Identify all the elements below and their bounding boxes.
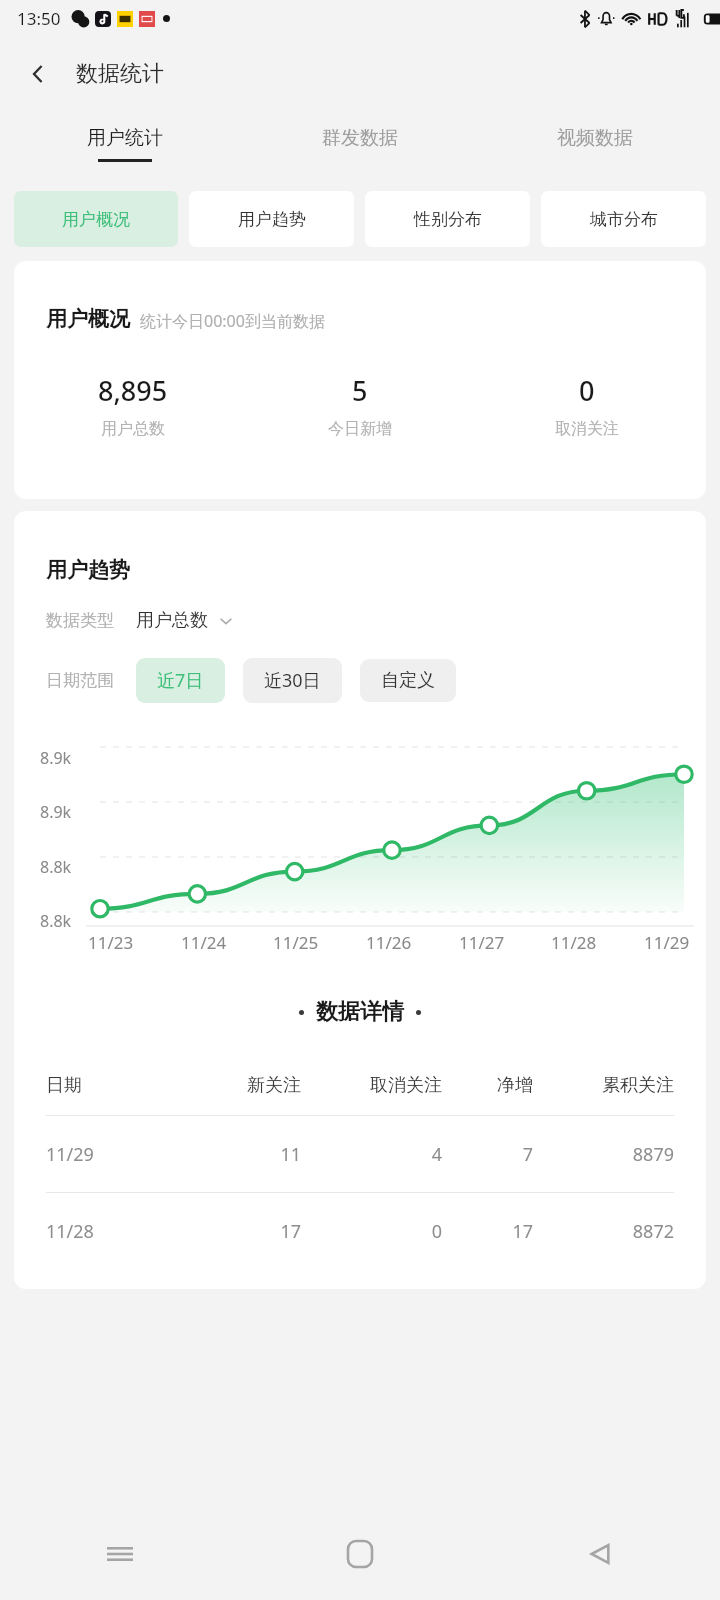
staticText: 8.9k: [40, 747, 72, 769]
staticText: 11/25: [273, 931, 319, 954]
staticText: 11/24: [181, 931, 227, 954]
staticText: 近7日: [157, 668, 204, 693]
staticText: 取消关注: [301, 1074, 442, 1097]
staticText: 新关注: [177, 1074, 301, 1097]
staticText: 今日新增: [328, 419, 392, 439]
staticText: 11: [177, 1142, 301, 1167]
staticText: 统计今日00:00到当前数据: [140, 310, 325, 332]
button[interactable]: 用户总数: [136, 609, 234, 632]
staticText: 4: [301, 1142, 442, 1167]
button[interactable]: 8,895: [20, 372, 246, 439]
staticText: 累积关注: [533, 1074, 674, 1097]
button[interactable]: 5: [246, 372, 473, 439]
staticText: 自定义: [381, 669, 435, 692]
button[interactable]: 11/28: [14, 1193, 706, 1269]
staticText: 用户概况: [46, 306, 130, 332]
staticText: 群发数据: [322, 126, 398, 150]
button[interactable]: 自定义: [360, 659, 456, 702]
button[interactable]: 用户统计: [8, 111, 242, 177]
staticText: 13:50: [17, 7, 61, 30]
button[interactable]: Back: [480, 1508, 720, 1600]
button[interactable]: 近30日: [243, 658, 342, 703]
staticText: 用户概况: [62, 209, 130, 230]
button[interactable]: 11/29: [14, 1116, 706, 1192]
staticText: 数据类型: [46, 610, 114, 631]
button[interactable]: 用户趋势: [189, 191, 354, 247]
staticText: 日期范围: [46, 670, 114, 691]
button[interactable]: 用户概况: [14, 191, 178, 247]
staticText: 日期: [46, 1074, 177, 1097]
button[interactable]: Back: [12, 48, 64, 100]
staticText: 11/28: [46, 1219, 177, 1244]
button[interactable]: Home: [240, 1508, 480, 1600]
staticText: 用户总数: [101, 419, 165, 439]
staticText: 净增: [442, 1074, 533, 1097]
button[interactable]: 视频数据: [477, 111, 712, 177]
staticText: 城市分布: [590, 209, 658, 230]
staticText: 8.8k: [40, 856, 72, 878]
staticText: 8,895: [98, 372, 168, 409]
staticText: 数据统计: [76, 60, 164, 88]
staticText: 11/23: [88, 931, 134, 954]
staticText: 8879: [533, 1142, 674, 1167]
staticText: 17: [442, 1219, 533, 1244]
staticText: 5: [352, 372, 368, 409]
staticText: 11/27: [459, 931, 505, 954]
staticText: 0: [301, 1219, 442, 1244]
staticText: 视频数据: [557, 126, 633, 150]
staticText: 8.8k: [40, 910, 72, 932]
staticText: 用户统计: [87, 126, 163, 150]
staticText: 用户趋势: [46, 557, 130, 583]
button[interactable]: 城市分布: [541, 191, 706, 247]
staticText: 用户趋势: [238, 209, 306, 230]
staticText: 11/29: [644, 931, 690, 954]
button[interactable]: Recents: [0, 1508, 240, 1600]
button[interactable]: 近7日: [136, 658, 225, 703]
staticText: 性别分布: [414, 209, 482, 230]
staticText: 取消关注: [555, 419, 619, 439]
staticText: 7: [442, 1142, 533, 1167]
staticText: 数据详情: [316, 998, 404, 1026]
staticText: 11/29: [46, 1142, 177, 1167]
staticText: 11/28: [551, 931, 597, 954]
staticText: 11/26: [366, 931, 412, 954]
staticText: 8872: [533, 1219, 674, 1244]
button[interactable]: 群发数据: [242, 111, 477, 177]
staticText: 17: [177, 1219, 301, 1244]
staticText: 0: [579, 372, 595, 409]
button[interactable]: 性别分布: [365, 191, 530, 247]
staticText: 近30日: [264, 668, 321, 693]
staticText: 8.9k: [40, 801, 72, 823]
button[interactable]: 0: [473, 372, 700, 439]
staticText: 用户总数: [136, 609, 208, 632]
